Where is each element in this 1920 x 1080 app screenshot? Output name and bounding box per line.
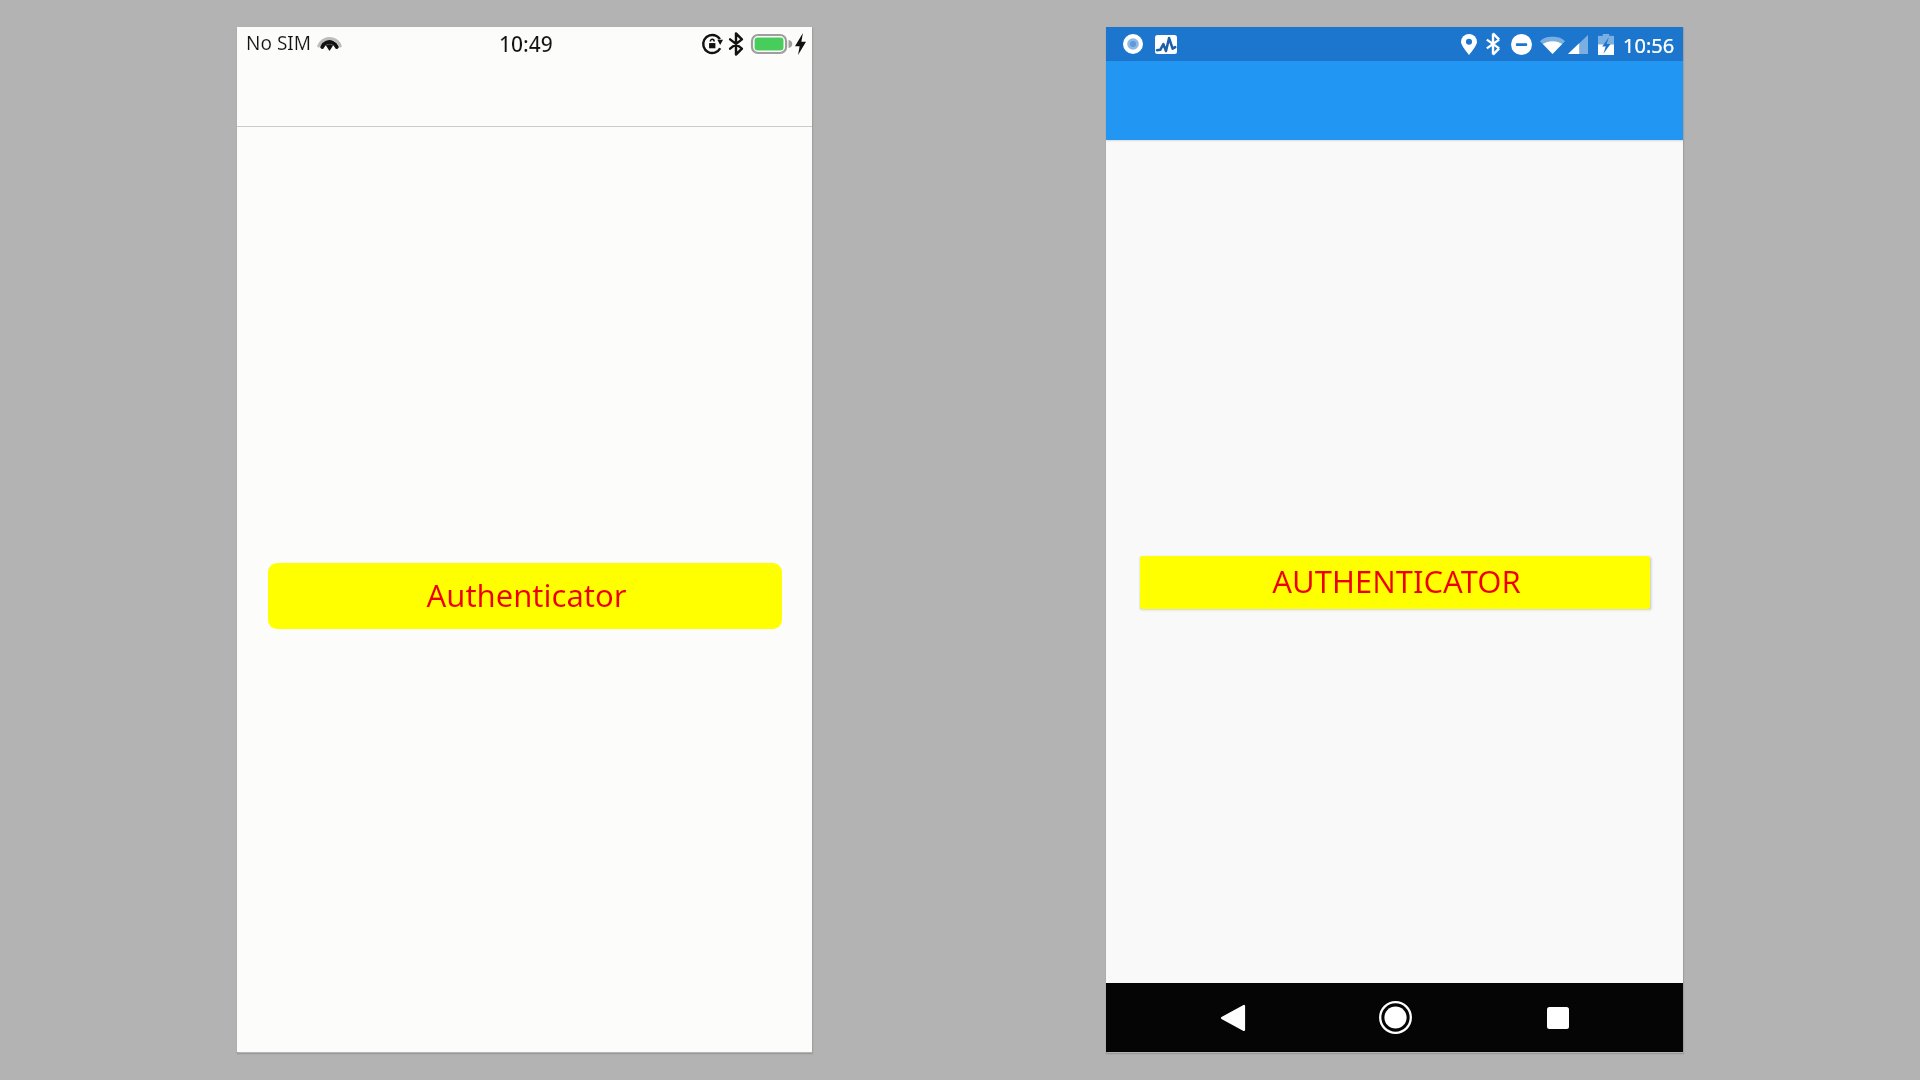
- button[interactable]: Home: [1367, 989, 1424, 1046]
- button[interactable]: AUTHENTICATOR: [1140, 556, 1650, 609]
- button[interactable]: Recent apps: [1529, 989, 1586, 1046]
- staticText: AUTHENTICATOR: [1272, 560, 1521, 602]
- button[interactable]: Authenticator: [268, 563, 782, 629]
- staticText: Authenticator: [426, 574, 627, 616]
- staticText: No SIM: [246, 30, 311, 56]
- staticText: 10:56: [1623, 32, 1675, 59]
- button[interactable]: Back: [1204, 989, 1261, 1046]
- staticText: 10:49: [499, 30, 553, 59]
